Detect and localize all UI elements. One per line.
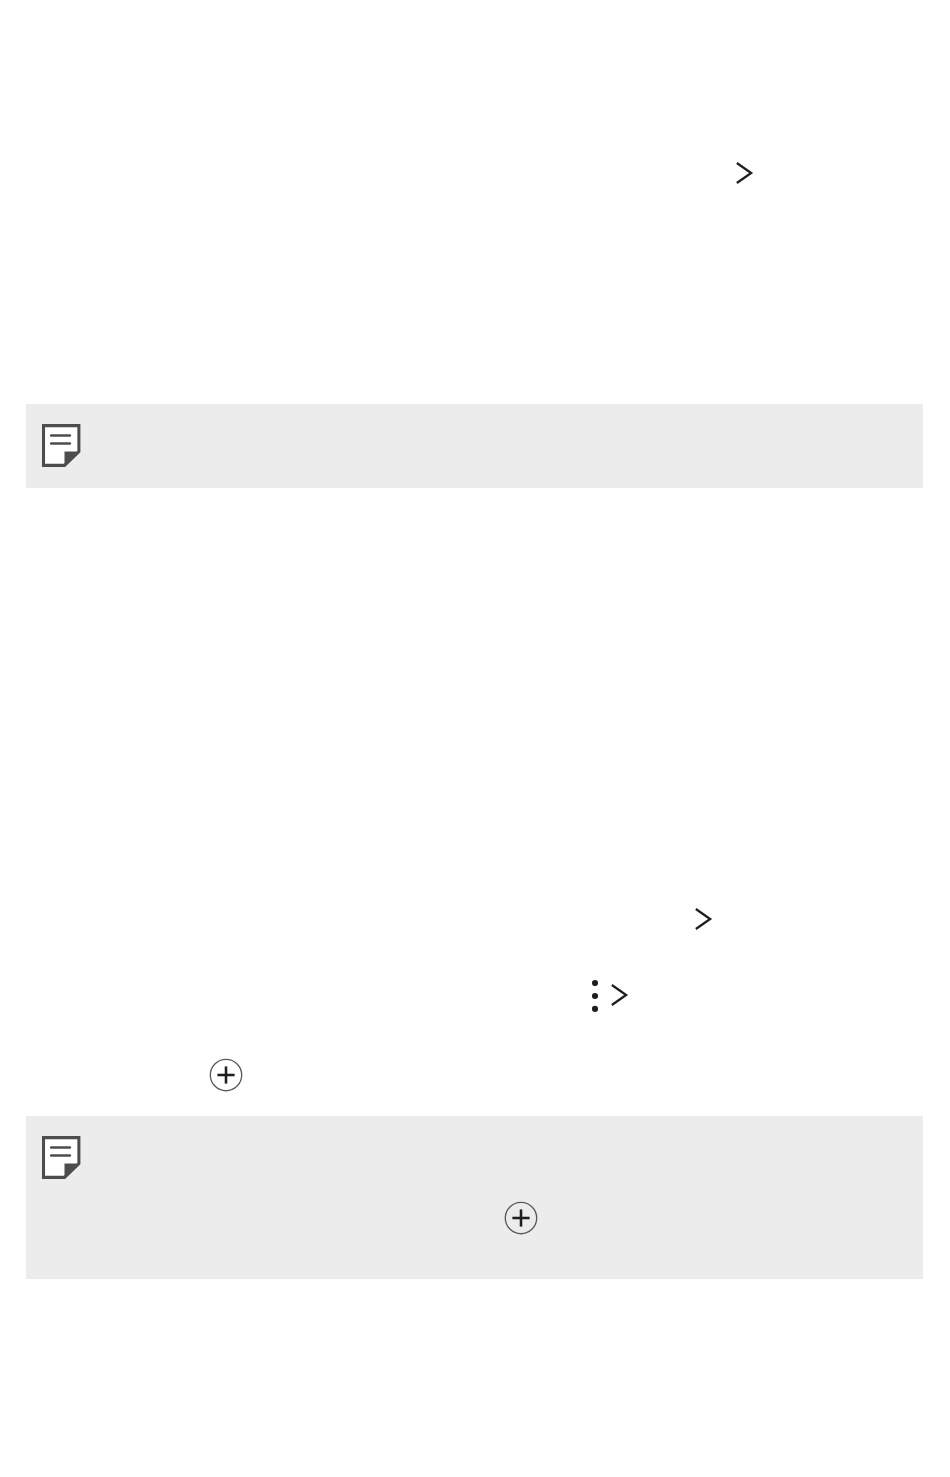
button[interactable]: Add bbox=[209, 1058, 243, 1092]
button[interactable]: Add bbox=[26, 1116, 923, 1279]
button[interactable]: More options bbox=[582, 979, 608, 1013]
button[interactable]: Open bbox=[598, 982, 639, 1008]
button[interactable]: Open bbox=[723, 159, 764, 186]
button[interactable]: Add bbox=[504, 1201, 538, 1235]
button[interactable] bbox=[26, 404, 923, 488]
button[interactable]: Open bbox=[682, 905, 723, 932]
